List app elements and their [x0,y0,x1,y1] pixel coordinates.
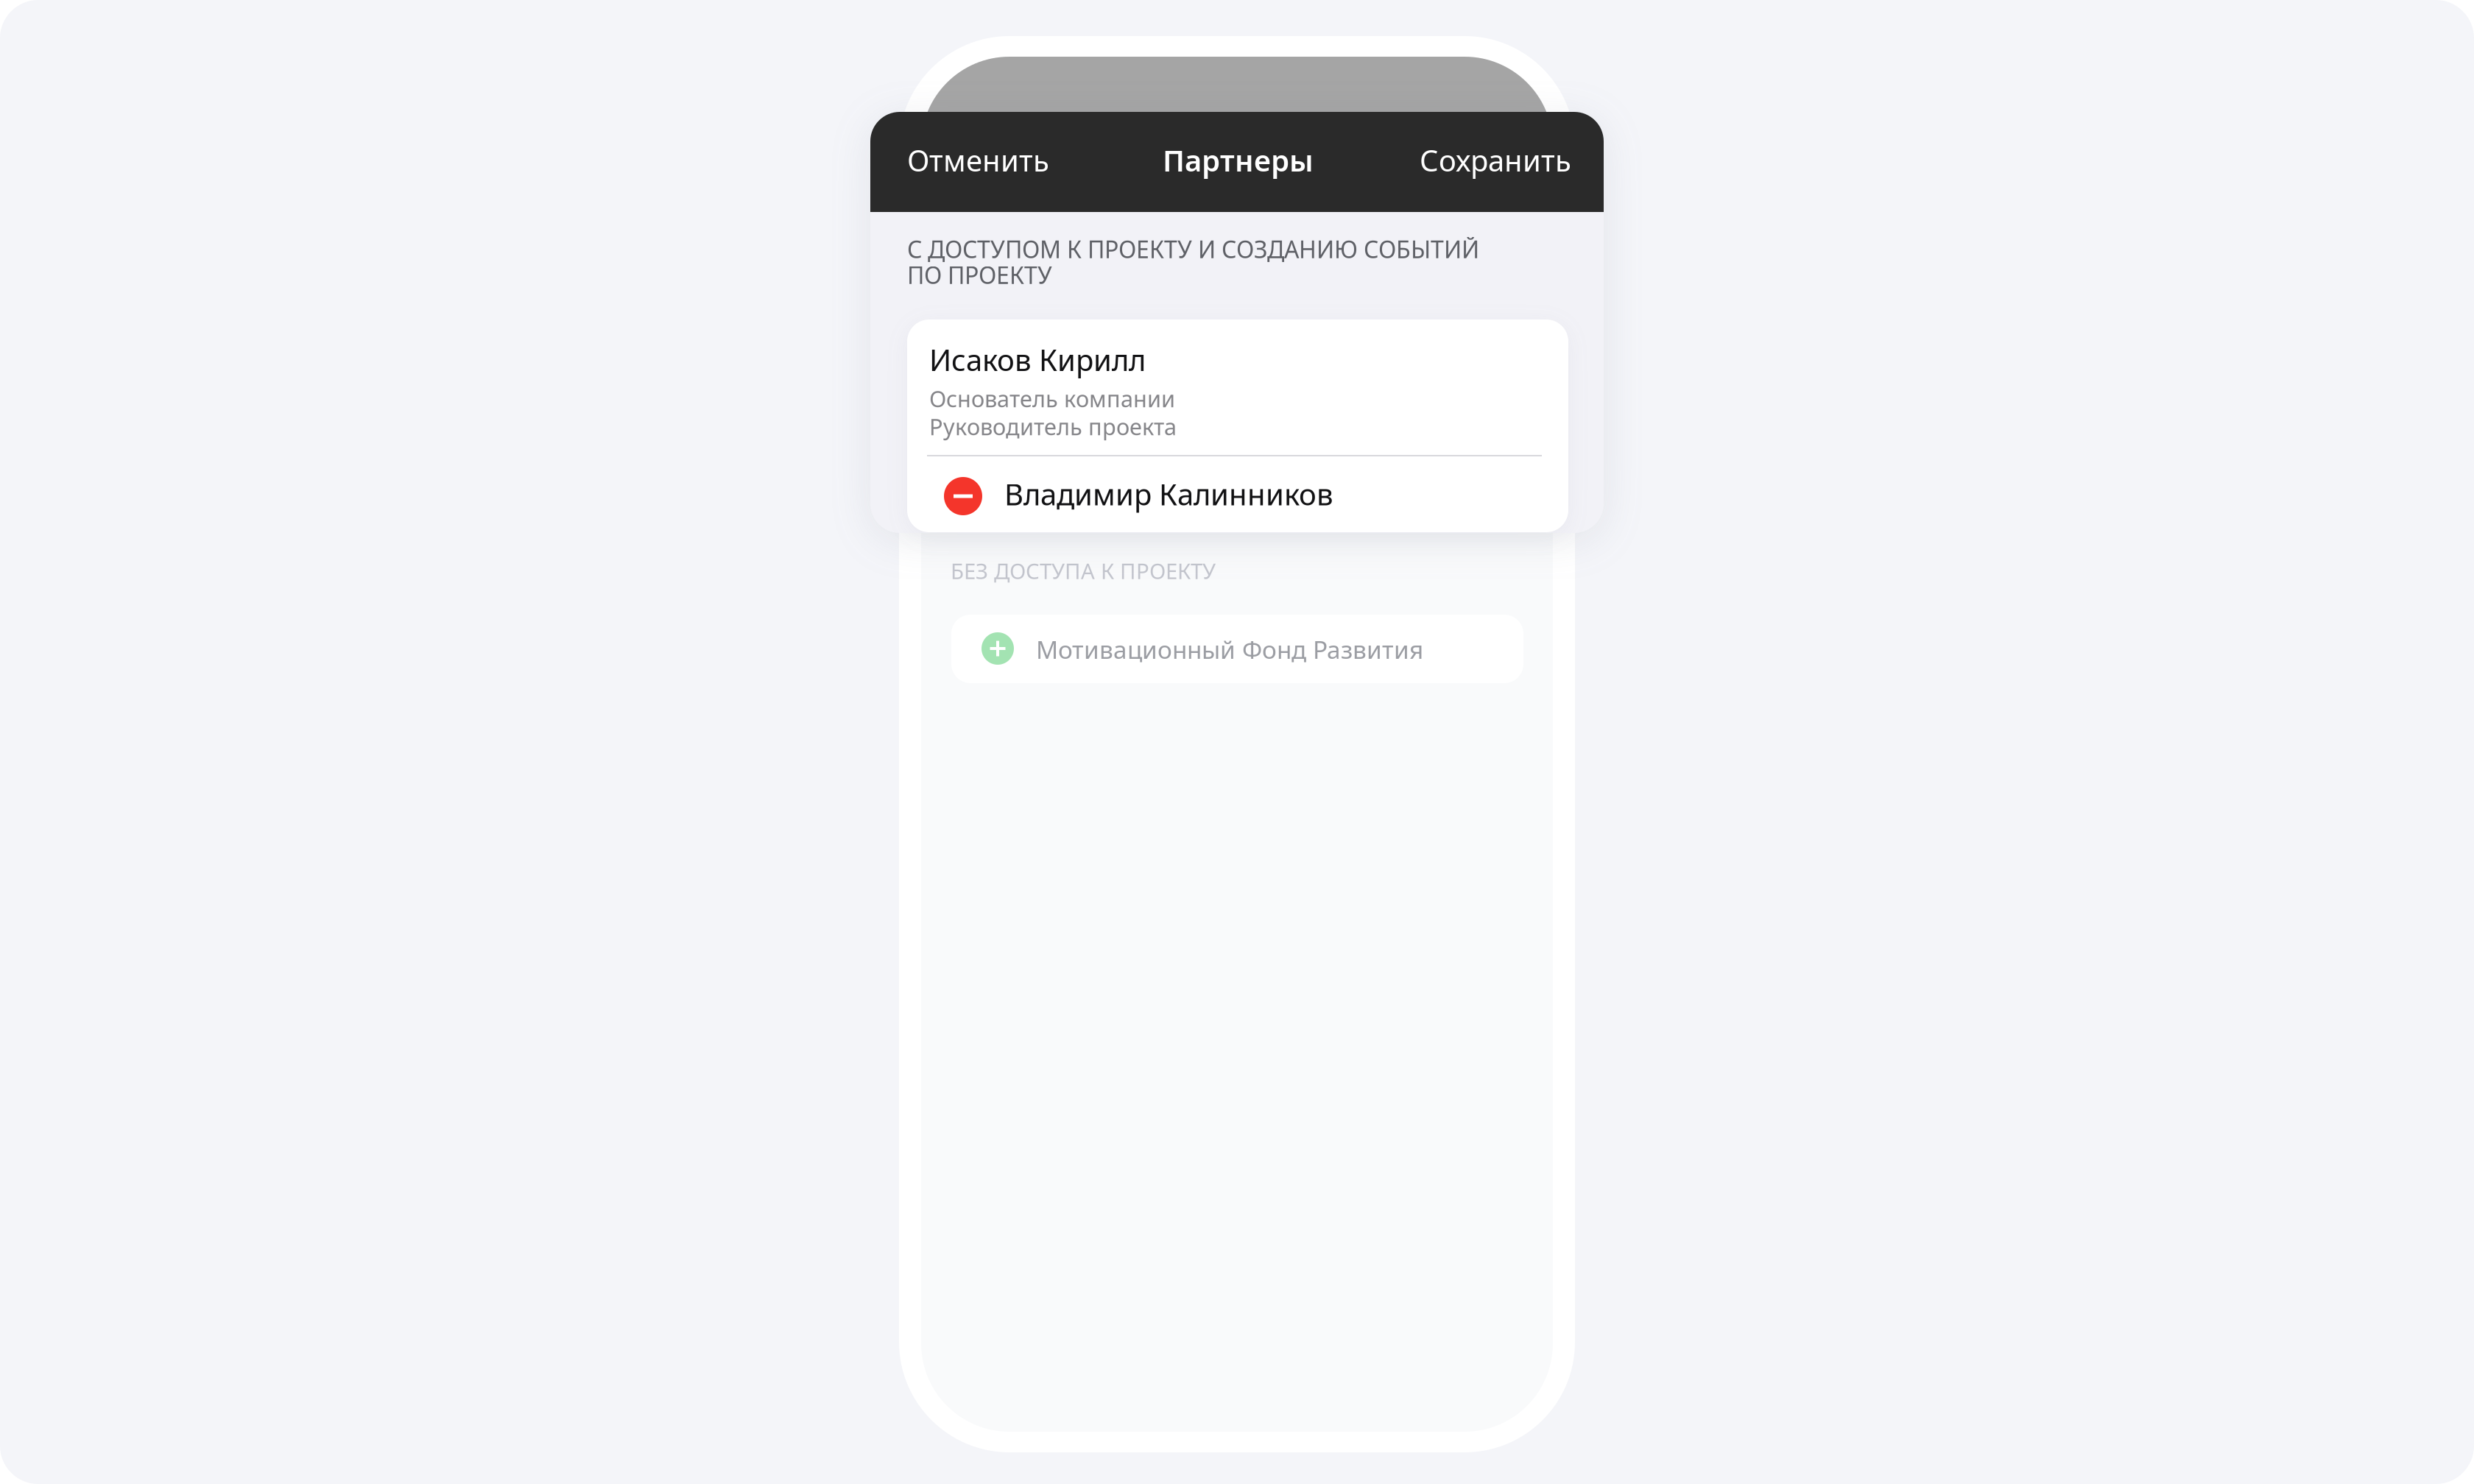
staticText: Основатель компании [929,384,1175,413]
staticText: ПО ПРОЕКТУ [907,259,1052,290]
staticText: Мотивационный Фонд Развития [1036,633,1423,666]
staticText: Отменить [907,141,1049,180]
button[interactable]: Отменить [907,141,1049,180]
staticText: Владимир Калинников [1004,474,1333,513]
staticText: Руководитель проекта [929,411,1177,441]
staticText: БЕЗ ДОСТУПА К ПРОЕКТУ [951,556,1216,585]
button[interactable]: Сохранить [1420,141,1571,180]
button[interactable]: Мотивационный Фонд Развития [951,615,1523,683]
staticText: Партнеры [1163,141,1314,180]
staticText: Сохранить [1420,141,1571,180]
staticText: Исаков Кирилл [929,340,1146,379]
button[interactable]: Владимир Калинников [927,458,1568,531]
staticText: С ДОСТУПОМ К ПРОЕКТУ И СОЗДАНИЮ СОБЫТИЙ [907,233,1479,265]
